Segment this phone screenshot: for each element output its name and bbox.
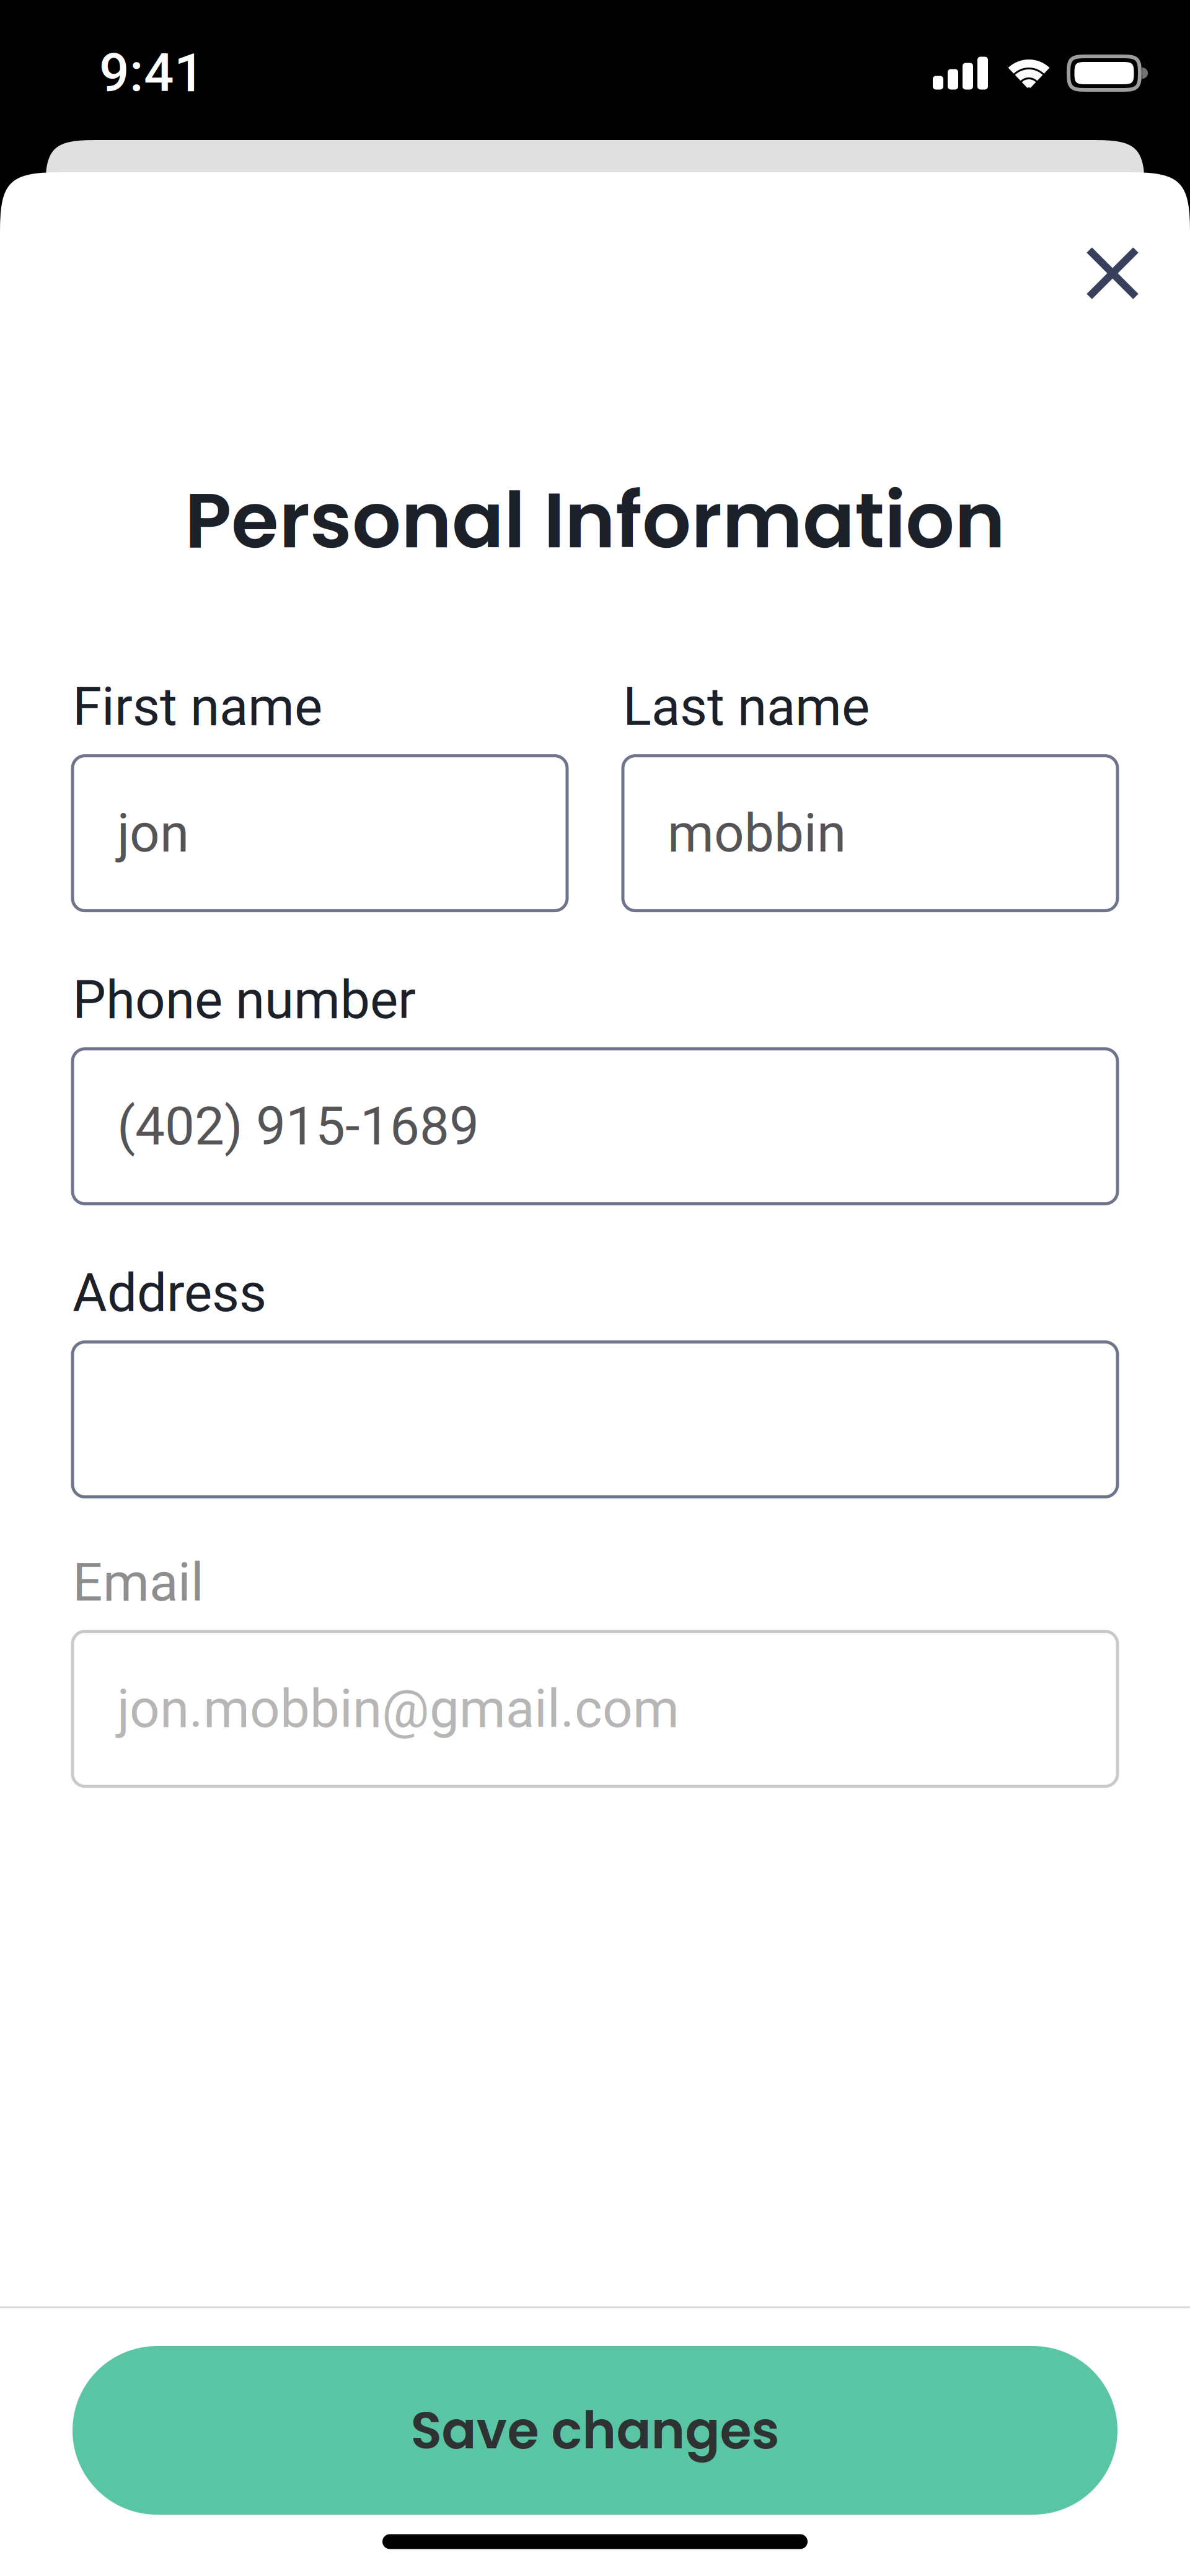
staticText: Email bbox=[73, 1551, 204, 1613]
staticText: 9:41 bbox=[99, 42, 205, 104]
staticText: jon bbox=[117, 802, 189, 864]
staticText: Save changes bbox=[411, 2394, 779, 2466]
button[interactable]: Close bbox=[1070, 231, 1155, 315]
staticText: (402) 915-1689 bbox=[117, 1095, 479, 1157]
staticText: Address bbox=[73, 1262, 267, 1324]
button[interactable]: Save changes bbox=[73, 2346, 1117, 2515]
staticText: mobbin bbox=[668, 802, 846, 864]
staticText: Phone number bbox=[73, 969, 416, 1031]
staticText: Last name bbox=[623, 676, 870, 738]
staticText: Personal Information bbox=[185, 467, 1005, 574]
staticText: jon.mobbin@gmail.com bbox=[117, 1678, 679, 1740]
staticText: First name bbox=[73, 676, 322, 738]
